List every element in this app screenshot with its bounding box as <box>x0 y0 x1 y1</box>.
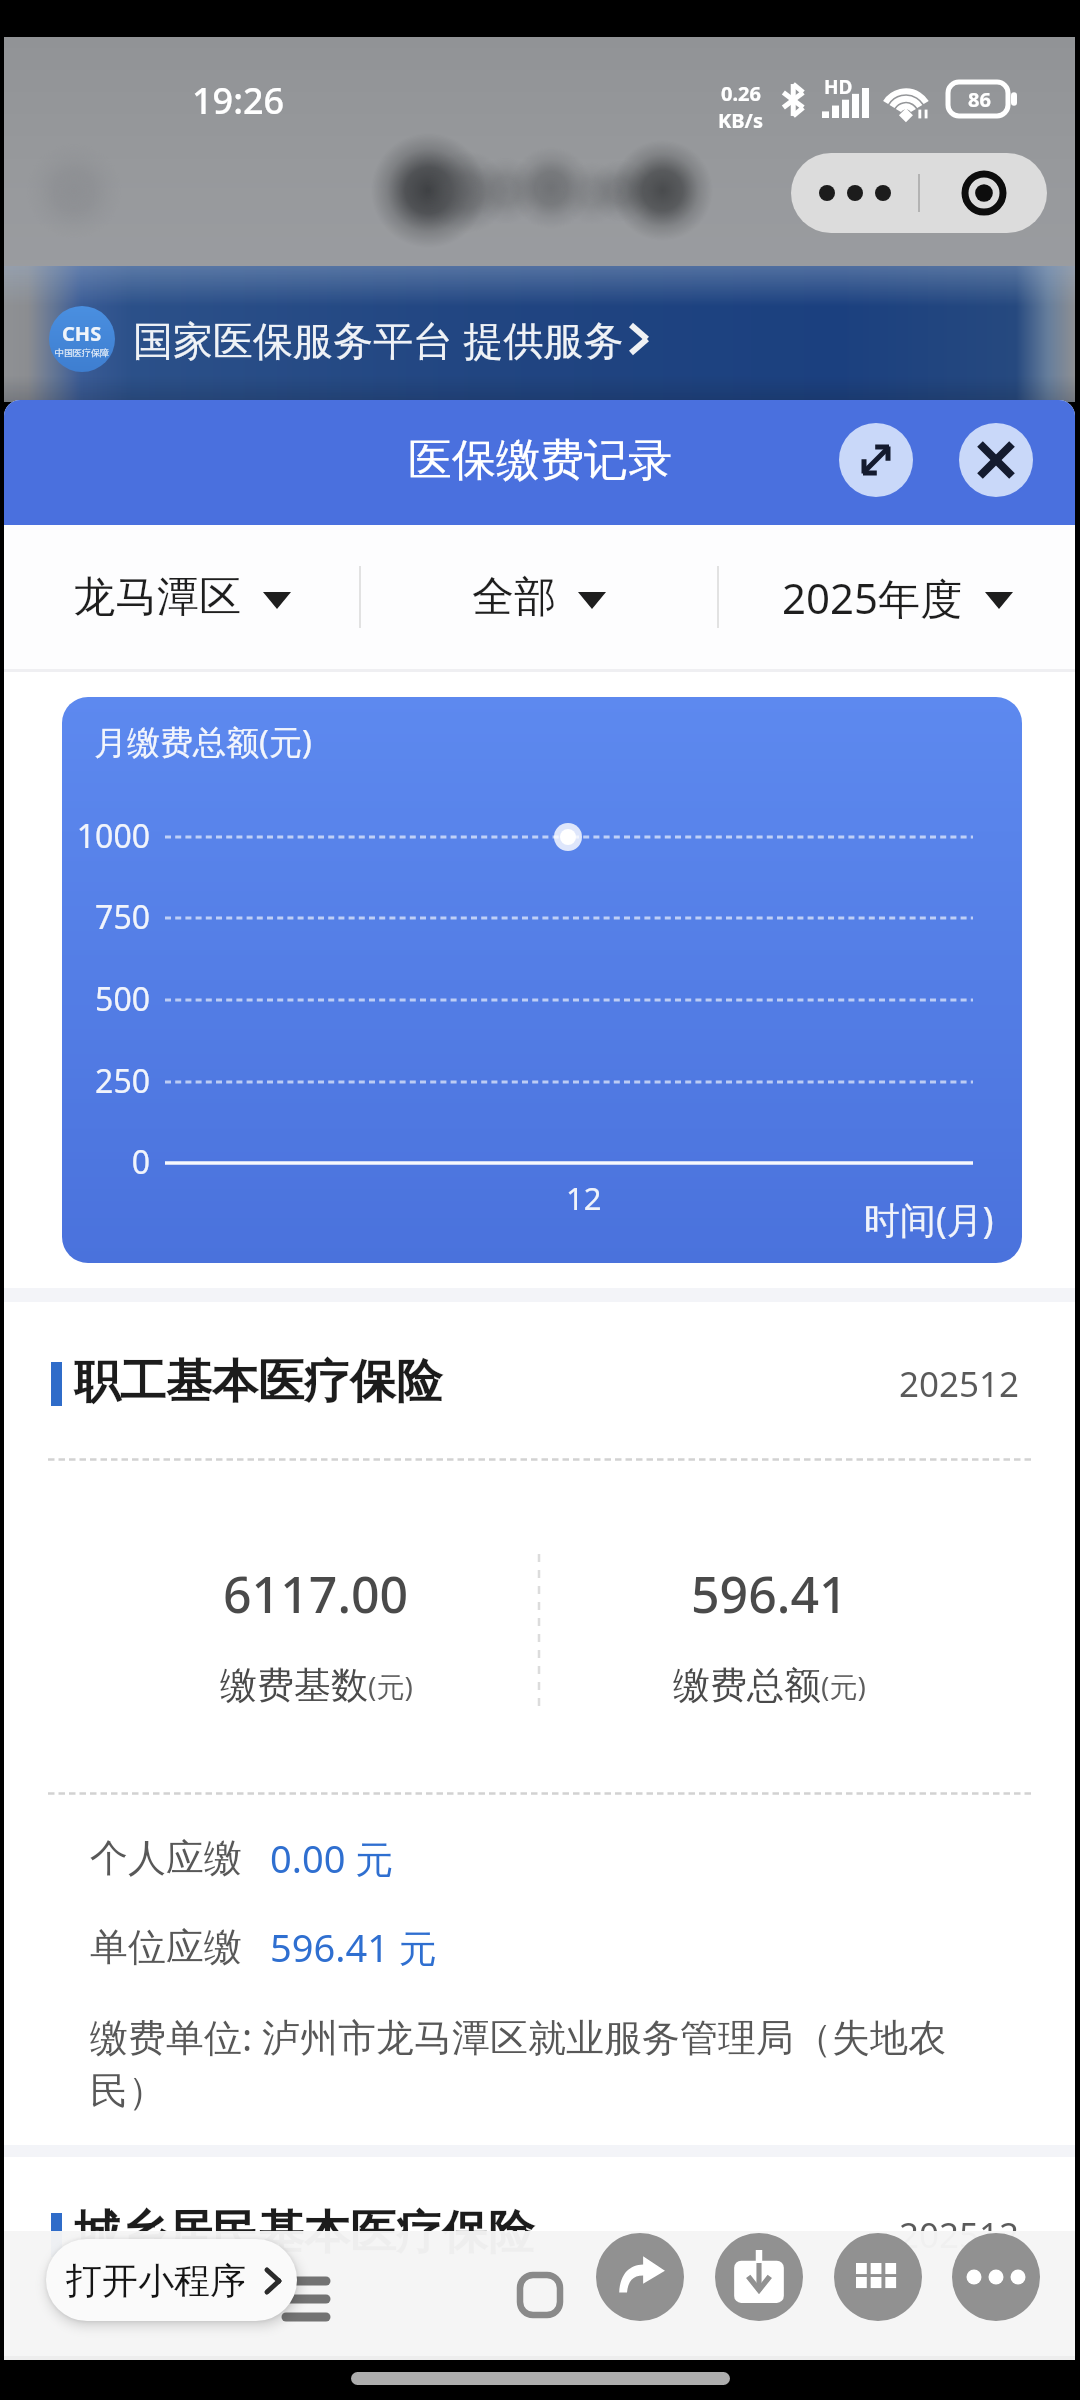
button[interactable]: Expand <box>839 423 913 497</box>
staticText: 19:26 <box>192 76 285 125</box>
button[interactable]: Save <box>715 2233 803 2321</box>
button[interactable]: Close mini program <box>920 153 1047 233</box>
button[interactable]: Share <box>596 2233 684 2321</box>
staticText: 缴费总额 <box>673 1662 821 1709</box>
button[interactable]: 打开小程序 <box>46 2239 297 2321</box>
staticText: (元) <box>821 1667 866 1705</box>
staticText: 12 <box>566 1177 602 1219</box>
button[interactable]: 2025年度 <box>719 525 1075 669</box>
staticText: KB/s <box>718 107 763 134</box>
staticText: 596.41 元 <box>270 1921 437 1973</box>
staticText: 500 <box>95 977 150 1021</box>
staticText: 全部 <box>472 571 556 624</box>
staticText: 月缴费总额(元) <box>94 719 312 764</box>
staticText: 0.26 <box>721 80 761 107</box>
staticText: 750 <box>95 895 150 939</box>
button[interactable]: More options <box>791 153 918 233</box>
staticText: 单位应缴 <box>90 1923 242 1971</box>
button[interactable]: Apps <box>834 2233 922 2321</box>
button[interactable]: More <box>952 2233 1040 2321</box>
staticText: 202512 <box>899 2211 1020 2259</box>
staticText: 城乡居民基本医疗保险 <box>74 2204 534 2262</box>
staticText: 国家医保服务平台 提供服务 <box>133 312 624 367</box>
staticText: 2025年度 <box>782 569 963 626</box>
staticText: 202512 <box>899 1360 1020 1408</box>
staticText: 职工基本医疗保险 <box>74 1353 442 1411</box>
staticText: 缴费单位: 泸州市龙马潭区就业服务管理局（失地农民） <box>90 2010 1002 2116</box>
staticText: 时间(月) <box>864 1195 994 1244</box>
button[interactable]: 龙马潭区 <box>4 525 359 669</box>
button[interactable]: CHS <box>49 306 664 372</box>
staticText: 6117.00 <box>223 1560 409 1628</box>
button[interactable]: 全部 <box>361 525 717 669</box>
button[interactable]: Close <box>959 423 1033 497</box>
staticText: 0 <box>131 1140 150 1184</box>
staticText: 医保缴费记录 <box>408 433 672 488</box>
staticText: 中国医疗保障 <box>55 347 109 358</box>
staticText: 龙马潭区 <box>73 571 241 624</box>
staticText: 1000 <box>76 814 150 858</box>
staticText: 打开小程序 <box>66 2258 246 2303</box>
staticText: 0.00 元 <box>270 1832 394 1884</box>
staticText: CHS <box>62 320 102 347</box>
staticText: 596.41 <box>691 1560 848 1628</box>
staticText: 86 <box>968 86 991 113</box>
staticText: (元) <box>368 1667 413 1705</box>
staticText: 250 <box>95 1059 150 1103</box>
staticText: HD <box>824 74 853 100</box>
staticText: 缴费基数 <box>220 1662 368 1709</box>
staticText: 个人应缴 <box>90 1834 242 1882</box>
